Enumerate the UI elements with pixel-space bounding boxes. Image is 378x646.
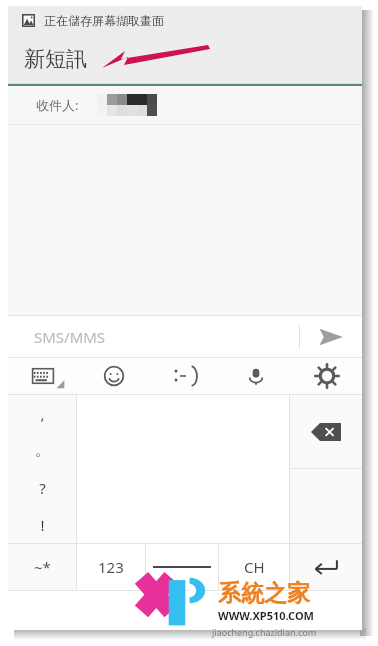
button[interactable]: 新短訊 (8, 34, 362, 83)
button[interactable]: Emoji (78, 358, 149, 394)
button[interactable]: Enter (290, 544, 362, 590)
button[interactable]: ! (8, 506, 76, 543)
button[interactable]: Settings (291, 358, 362, 394)
button[interactable]: ? (8, 469, 76, 506)
button[interactable]: Keyboard layout (8, 358, 78, 394)
staticText: SMS/MMS (34, 327, 106, 347)
staticText: jiaocheng.chazidian.com (212, 626, 317, 638)
staticText: ? (39, 478, 46, 498)
staticText: ! (40, 515, 45, 535)
button[interactable]: , (8, 395, 76, 432)
button[interactable]: Backspace (290, 395, 362, 468)
staticText: 系統之家 (218, 579, 310, 608)
button[interactable]: Emoticon (149, 358, 220, 394)
button[interactable]: 收件人: (8, 86, 362, 124)
staticText: 新短訊 (24, 46, 87, 72)
staticText: 123 (98, 557, 124, 577)
staticText: 。 (35, 441, 50, 460)
staticText: 正在儲存屏幕擷取畫面 (44, 13, 164, 28)
staticText: CH (244, 557, 265, 577)
button[interactable]: Voice input (220, 358, 291, 394)
staticText: , (40, 404, 45, 424)
button[interactable]: 。 (8, 432, 76, 469)
staticText: 收件人: (36, 96, 79, 114)
button[interactable]: SMS/MMS (8, 327, 299, 347)
button[interactable]: ~* (8, 544, 76, 590)
button[interactable]: Send (300, 316, 362, 357)
button[interactable]: Space (146, 544, 218, 590)
button[interactable]: CH (219, 544, 289, 590)
staticText: WWW.XP510.COM (218, 608, 314, 623)
staticText: ~* (34, 557, 51, 577)
button[interactable]: 123 (77, 544, 145, 590)
